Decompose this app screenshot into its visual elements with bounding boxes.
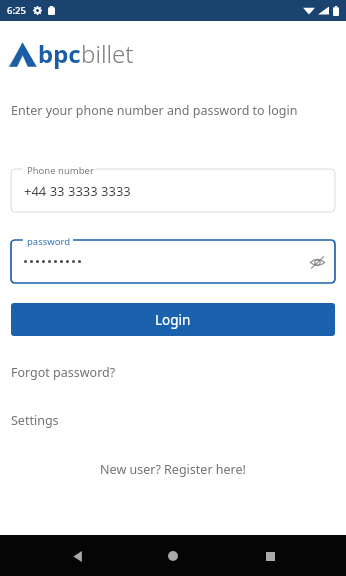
button[interactable]: New user? Register here! [0,461,346,478]
staticText: 6:25 [7,4,26,17]
staticText: billet [81,37,134,70]
staticText: Enter your phone number and password to … [11,102,298,119]
staticText: bpc [38,37,81,70]
staticText: Phone number [27,164,94,177]
staticText: +44 33 3333 3333 [24,182,131,200]
button[interactable]: Recent apps [250,536,290,576]
button[interactable]: Show password [304,249,330,275]
button[interactable]: Settings [0,412,346,429]
staticText: Settings [11,412,59,429]
staticText: password [27,235,71,248]
staticText: Login [155,311,191,329]
button[interactable]: Forgot password? [0,364,346,381]
staticText: New user? Register here! [0,461,346,478]
staticText: Forgot password? [11,364,116,381]
button[interactable]: Back [57,536,97,576]
button[interactable]: Login [11,303,335,336]
button[interactable]: Home [153,536,193,576]
